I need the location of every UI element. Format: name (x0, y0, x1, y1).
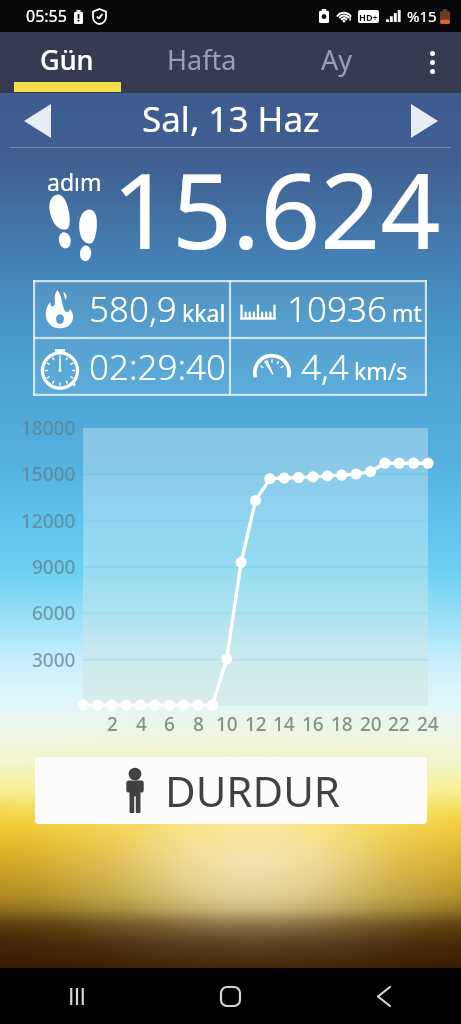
staticText: 6000 (32, 600, 76, 626)
button[interactable]: Ay (269, 32, 404, 93)
staticText: kkal (182, 297, 226, 328)
staticText: 10936 (287, 285, 387, 333)
staticText: Gün (40, 41, 94, 78)
staticText: 12 (245, 711, 267, 735)
button[interactable]: 4,4 (230, 338, 427, 396)
button[interactable]: 02:29:40 (33, 338, 230, 396)
staticText: %15 (407, 6, 437, 26)
staticText: 8 (193, 711, 204, 735)
staticText: Hafta (167, 41, 237, 78)
button[interactable]: Recent apps (49, 968, 105, 1024)
button[interactable]: Gün (0, 32, 134, 93)
button[interactable]: Hafta (134, 32, 269, 93)
button[interactable]: More options (404, 32, 461, 93)
staticText: HD+ (359, 11, 378, 23)
staticText: 02:29:40 (89, 343, 226, 391)
button[interactable]: DURDUR (35, 757, 427, 824)
button[interactable]: Home (202, 968, 258, 1024)
staticText: 16 (302, 711, 324, 735)
staticText: 12000 (21, 508, 76, 534)
button[interactable]: Previous day (14, 99, 60, 143)
staticText: 3000 (32, 647, 76, 673)
staticText: 24 (417, 711, 439, 735)
staticText: Sal, 13 Haz (142, 95, 320, 143)
staticText: 14 (273, 711, 295, 735)
staticText: 15000 (21, 461, 76, 487)
staticText: DURDUR (165, 762, 340, 819)
staticText: 22 (388, 711, 410, 735)
staticText: mt (392, 297, 422, 328)
button[interactable]: Next day (401, 99, 447, 143)
staticText: 4,4 (301, 343, 349, 391)
staticText: 580,9 (89, 285, 177, 333)
staticText: 2 (107, 711, 118, 735)
staticText: 10 (216, 711, 238, 735)
button[interactable]: 10936 (230, 280, 427, 338)
button[interactable]: Back (356, 968, 412, 1024)
staticText: Ay (321, 41, 353, 78)
staticText: adım (47, 166, 102, 197)
staticText: 4 (136, 711, 147, 735)
staticText: 05:55 (26, 5, 67, 27)
staticText: 18000 (21, 415, 76, 441)
staticText: 9000 (32, 554, 76, 580)
staticText: 6 (164, 711, 175, 735)
staticText: 18 (331, 711, 353, 735)
button[interactable]: 580,9 (33, 280, 230, 338)
staticText: 20 (360, 711, 382, 735)
staticText: km/s (354, 355, 408, 386)
staticText: 15.624 (112, 137, 441, 280)
